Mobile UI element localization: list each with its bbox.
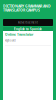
staticText: Online Translator — [5, 32, 33, 37]
staticText: English to Spanish — [14, 27, 42, 31]
staticText: TRANSLATOR CAMPUS — [3, 7, 40, 12]
button[interactable]: English to Spanish — [3, 27, 53, 31]
staticText: Advertisement — [18, 21, 38, 24]
staticText: keyboard — [5, 39, 16, 42]
staticText: DICTIONARY GRAMMAR AND — [3, 3, 51, 8]
button[interactable]: Online Translator — [5, 33, 33, 36]
